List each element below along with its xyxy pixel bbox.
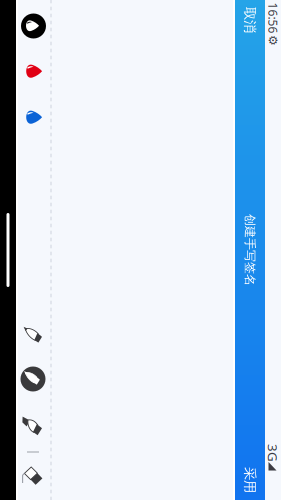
button[interactable]: Brush pen [17,363,49,395]
staticText: 取消 [237,12,263,28]
button[interactable]: 取消 [235,0,265,40]
button[interactable]: Marker [18,411,50,443]
button[interactable]: Pen [18,320,50,352]
button[interactable]: Ink colour [17,100,49,134]
staticText: 16:56 [257,10,281,26]
button[interactable]: Ink colour, selected [17,9,49,43]
button[interactable]: 采用 [235,460,265,500]
staticText: 3G [264,444,281,462]
button[interactable]: Eraser [18,461,50,493]
staticText: 采用 [237,472,263,488]
button[interactable]: Ink colour [17,54,49,88]
staticText: ⚙ [267,34,278,47]
staticText: 创建手写签名 [214,243,281,257]
